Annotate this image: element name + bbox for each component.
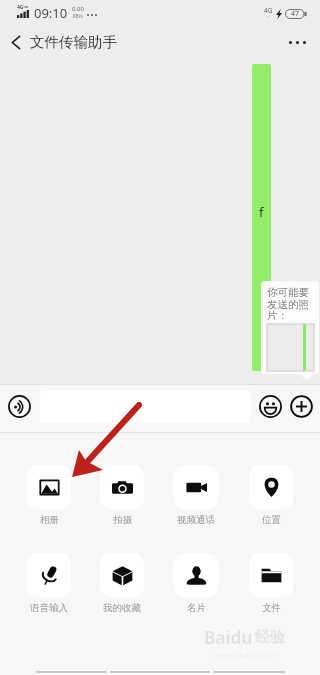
button[interactable]: More options	[282, 26, 312, 58]
staticText: 你可能要发送的照片：	[267, 286, 314, 322]
button[interactable]: 拍摄	[94, 465, 150, 526]
staticText: 47	[291, 9, 300, 19]
staticText: 经验	[255, 628, 285, 647]
staticText: 0.00	[72, 5, 84, 13]
staticText: KB/s	[73, 13, 83, 19]
staticText: 文件	[262, 602, 281, 614]
staticText: 4G	[264, 6, 273, 15]
button[interactable]: 视频通话	[168, 465, 224, 526]
button[interactable]: 位置	[243, 465, 299, 526]
button[interactable]: 文件	[243, 553, 299, 614]
button[interactable]: 语音输入	[21, 553, 77, 614]
staticText: 视频通话	[177, 514, 215, 526]
staticText: 位置	[262, 514, 281, 526]
button[interactable]: Emoji	[259, 395, 282, 418]
staticText: Baidu	[204, 626, 253, 649]
button[interactable]: 相册	[21, 465, 77, 526]
staticText: ⋯	[267, 15, 271, 19]
staticText: 我的收藏	[103, 602, 141, 614]
staticText: 09:10	[34, 4, 68, 22]
button[interactable]: 我的收藏	[94, 553, 150, 614]
button[interactable]: 名片	[168, 553, 224, 614]
staticText: 语音输入	[30, 602, 68, 614]
staticText: 相册	[40, 514, 59, 526]
button[interactable]	[40, 390, 250, 423]
staticText: 拍摄	[113, 514, 132, 526]
staticText: 名片	[187, 602, 206, 614]
button[interactable]: Voice input	[8, 395, 31, 418]
staticText: 文件传输助手	[30, 33, 117, 51]
button[interactable]: Back	[2, 26, 30, 58]
staticText: f	[259, 203, 264, 221]
button[interactable]: Add attachment	[290, 395, 313, 418]
staticText: 4Gᴴᴰ	[17, 4, 29, 11]
